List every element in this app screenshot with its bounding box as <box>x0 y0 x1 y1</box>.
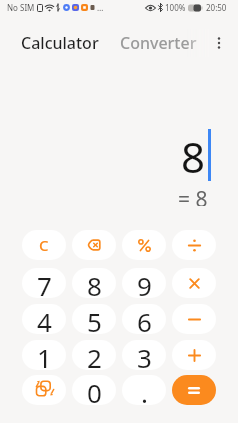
button[interactable]: 5 <box>72 304 116 334</box>
button[interactable] <box>22 375 66 405</box>
staticText: 4 <box>37 304 52 334</box>
button[interactable]: 4 <box>22 304 66 334</box>
staticText: 100% <box>165 2 186 13</box>
staticText: 6 <box>137 304 152 334</box>
button[interactable]: 3 <box>122 340 166 370</box>
staticText: 1 <box>37 340 52 370</box>
button[interactable]: Converter <box>120 32 197 54</box>
button[interactable] <box>172 268 216 298</box>
button[interactable]: 8 <box>72 268 116 298</box>
button[interactable]: 6 <box>122 304 166 334</box>
staticText: No SIM <box>7 2 35 13</box>
staticText: Calculator <box>21 32 99 54</box>
button[interactable] <box>172 230 216 260</box>
staticText: 0 <box>87 375 102 405</box>
staticText: 2 <box>87 340 102 370</box>
staticText: 9 <box>137 268 152 298</box>
button[interactable] <box>172 375 216 405</box>
button[interactable]: Calculator <box>21 32 99 54</box>
button[interactable]: C <box>22 230 66 260</box>
staticText: 3 <box>137 340 152 370</box>
button[interactable] <box>212 36 226 50</box>
staticText: 8 <box>87 268 102 298</box>
staticText: 20:50 <box>206 2 227 13</box>
button[interactable]: 0 <box>72 375 116 405</box>
staticText: 8 <box>181 128 206 181</box>
staticText: . <box>141 375 148 405</box>
staticText: = 8 <box>178 185 208 206</box>
staticText: C <box>39 235 49 255</box>
staticText: 7 <box>37 268 52 298</box>
staticText: … <box>97 2 104 13</box>
staticText: 5 <box>87 304 102 334</box>
button[interactable] <box>122 230 166 260</box>
button[interactable]: 9 <box>122 268 166 298</box>
button[interactable]: 1 <box>22 340 66 370</box>
button[interactable] <box>172 304 216 334</box>
button[interactable]: 7 <box>22 268 66 298</box>
button[interactable] <box>72 230 116 260</box>
button[interactable]: 2 <box>72 340 116 370</box>
button[interactable] <box>172 340 216 370</box>
staticText: Converter <box>120 32 197 54</box>
button[interactable]: . <box>122 375 166 405</box>
